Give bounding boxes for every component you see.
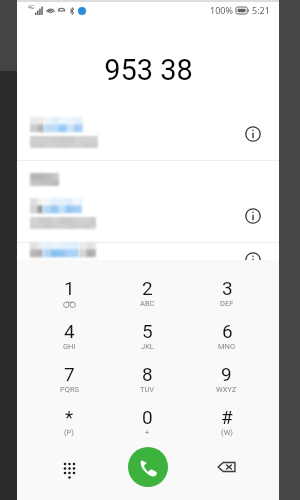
button[interactable]: *: [30, 406, 108, 449]
staticText: TUV: [140, 385, 155, 394]
staticText: JKL: [141, 342, 154, 351]
staticText: ABC: [140, 299, 155, 308]
staticText: 1: [64, 277, 75, 299]
button[interactable]: 7: [30, 363, 108, 406]
staticText: 2: [142, 277, 153, 299]
staticText: (W): [221, 428, 233, 437]
staticText: 9: [221, 363, 232, 385]
staticText: *: [65, 406, 74, 428]
staticText: 953 38: [104, 53, 193, 87]
staticText: WXYZ: [216, 385, 237, 394]
staticText: 4G: [28, 4, 35, 11]
button[interactable]: 9: [187, 363, 266, 406]
staticText: GHI: [63, 342, 76, 351]
button[interactable]: 1: [30, 277, 108, 320]
button[interactable]: [17, 243, 279, 261]
button[interactable]: 3: [187, 277, 266, 320]
button[interactable]: #: [187, 406, 266, 449]
button[interactable]: Contact details: [242, 249, 264, 271]
staticText: 4: [64, 320, 75, 342]
button[interactable]: [17, 104, 279, 161]
staticText: 7: [64, 363, 75, 385]
button[interactable]: Contact details: [242, 205, 264, 227]
button[interactable]: Backspace: [206, 446, 248, 488]
staticText: 0: [142, 406, 153, 428]
button[interactable]: 5: [108, 320, 187, 363]
button[interactable]: 0: [108, 406, 187, 449]
button[interactable]: 6: [187, 320, 266, 363]
staticText: DEF: [220, 299, 234, 308]
button[interactable]: Call: [128, 447, 168, 487]
staticText: 5:21: [252, 4, 270, 16]
button[interactable]: 8: [108, 363, 187, 406]
button[interactable]: 4: [30, 320, 108, 363]
button[interactable]: Contact details: [242, 123, 264, 145]
staticText: PQRS: [60, 385, 79, 394]
staticText: 6: [222, 320, 233, 342]
staticText: 8: [142, 363, 153, 385]
staticText: MNO: [218, 342, 236, 351]
staticText: 5: [142, 320, 153, 342]
button[interactable]: Keypad: [48, 446, 90, 488]
staticText: 100%: [210, 4, 233, 16]
staticText: 3: [222, 277, 233, 299]
button[interactable]: [17, 161, 279, 242]
button[interactable]: 2: [108, 277, 187, 320]
staticText: #: [221, 406, 233, 428]
staticText: +: [145, 428, 150, 437]
staticText: (P): [64, 428, 74, 437]
